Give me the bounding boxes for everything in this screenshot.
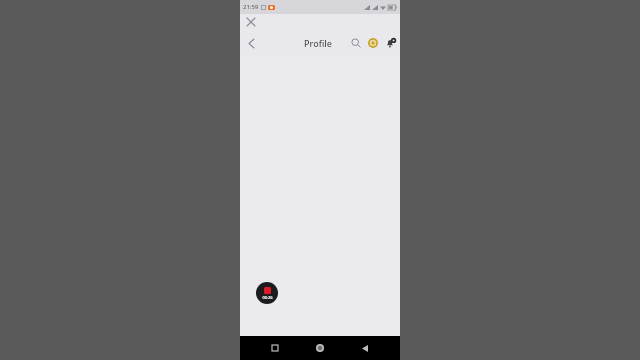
button[interactable]: Search — [348, 35, 364, 51]
button[interactable]: Notifications — [382, 35, 398, 51]
button[interactable]: Recents — [265, 338, 285, 358]
button[interactable]: Back — [243, 35, 259, 51]
button[interactable]: Home — [310, 338, 330, 358]
button[interactable]: Recording timer — [256, 282, 278, 304]
staticText: 00:26 — [262, 295, 273, 300]
staticText: 21:59 — [243, 3, 259, 11]
button[interactable]: Close — [244, 15, 258, 29]
button[interactable]: Back — [355, 338, 375, 358]
staticText: Profile — [304, 37, 332, 49]
button[interactable]: Rewards — [365, 35, 381, 51]
